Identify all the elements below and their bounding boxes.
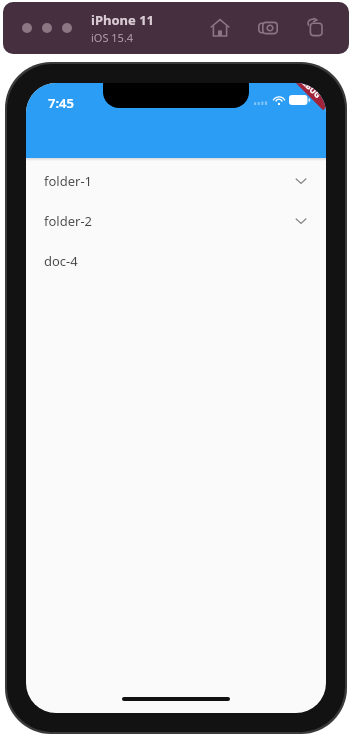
staticText: iPhone 11 — [91, 11, 154, 29]
staticText: folder-1 — [44, 172, 93, 190]
button[interactable]: Rotate — [303, 15, 329, 41]
button[interactable] — [42, 23, 52, 33]
button[interactable] — [22, 23, 32, 33]
button[interactable]: doc-4 — [26, 241, 326, 281]
staticText: 7:45 — [48, 94, 74, 112]
button[interactable]: Home — [207, 15, 233, 41]
staticText: doc-4 — [44, 252, 78, 270]
button[interactable]: folder-1 — [26, 161, 326, 201]
button[interactable]: Expand folder-1 — [290, 170, 312, 192]
staticText: folder-2 — [44, 212, 93, 230]
button[interactable]: folder-2 — [26, 201, 326, 241]
staticText: iOS 15.4 — [91, 30, 134, 45]
staticText: DEBUG — [296, 83, 324, 100]
button[interactable]: Expand folder-2 — [290, 210, 312, 232]
button[interactable] — [62, 23, 72, 33]
button[interactable]: Screenshot — [255, 15, 281, 41]
